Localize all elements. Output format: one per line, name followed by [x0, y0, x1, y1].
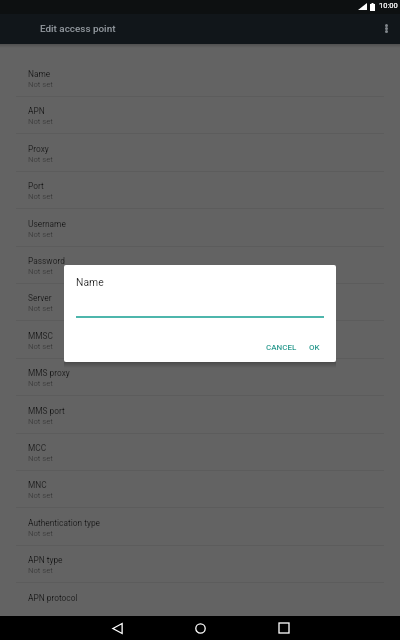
staticText: Server [28, 293, 52, 303]
staticText: Not set [28, 304, 53, 313]
button[interactable]: Home [159, 616, 242, 640]
staticText: MMS port [28, 406, 65, 416]
staticText: MMSC [28, 331, 53, 341]
staticText: MMS proxy [28, 368, 70, 378]
staticText: Not set [28, 192, 53, 201]
staticText: Port [28, 181, 44, 191]
staticText: Not set [28, 566, 53, 575]
staticText: Not set [28, 117, 53, 126]
button[interactable]: Recent apps [242, 616, 325, 640]
button[interactable]: APN [0, 97, 400, 134]
button[interactable]: APN type [0, 546, 400, 583]
button[interactable]: Name [0, 60, 400, 97]
staticText: Name [76, 276, 104, 288]
button[interactable]: Proxy [0, 135, 400, 172]
staticText: Not set [28, 155, 53, 164]
staticText: MNC [28, 480, 47, 490]
staticText: Not set [28, 379, 53, 388]
staticText: Password [28, 256, 65, 266]
button[interactable]: MMS port [0, 397, 400, 434]
staticText: Not set [28, 342, 53, 351]
button[interactable]: Authentication type [0, 509, 400, 546]
button[interactable]: Back [76, 616, 159, 640]
staticText: Not set [28, 80, 53, 89]
staticText: MCC [28, 443, 47, 453]
button[interactable]: APN protocol [0, 584, 400, 604]
staticText: Not set [28, 230, 53, 239]
staticText: Username [28, 219, 66, 229]
staticText: Name [28, 69, 51, 79]
staticText: Not set [28, 267, 53, 276]
staticText: Not set [28, 491, 53, 500]
staticText: 10:00 [379, 1, 398, 10]
staticText: APN [28, 106, 45, 116]
button[interactable]: MMS proxy [0, 359, 400, 396]
staticText: CANCEL [266, 343, 297, 352]
staticText: Proxy [28, 144, 49, 154]
staticText: Not set [28, 454, 53, 463]
button[interactable]: MMSC [0, 322, 400, 359]
staticText: Edit access point [40, 23, 116, 35]
button[interactable]: OK [305, 339, 324, 356]
button[interactable]: Server [0, 284, 400, 321]
staticText: Not set [28, 529, 53, 538]
button[interactable]: MNC [0, 471, 400, 508]
staticText: APN type [28, 555, 63, 565]
staticText: Authentication type [28, 518, 101, 528]
staticText: OK [309, 343, 320, 352]
button[interactable]: CANCEL [262, 339, 301, 356]
staticText: APN protocol [28, 593, 78, 603]
button[interactable]: More options [372, 14, 400, 44]
staticText: Not set [28, 417, 53, 426]
button[interactable]: Username [0, 210, 400, 247]
button[interactable]: Password [0, 247, 400, 284]
